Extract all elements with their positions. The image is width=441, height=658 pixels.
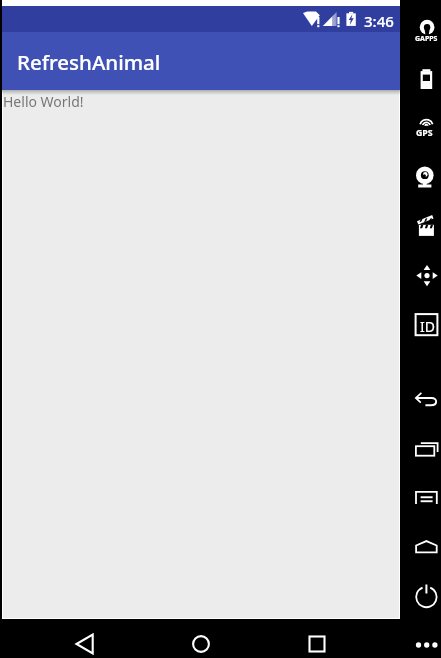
button[interactable]: Menu — [400, 487, 441, 511]
button[interactable]: Back — [62, 619, 107, 658]
button[interactable]: Overview — [400, 438, 441, 464]
button[interactable]: Back — [400, 388, 441, 414]
button[interactable]: Record screen — [400, 210, 441, 240]
button[interactable]: Google Apps — [400, 16, 441, 44]
button[interactable]: Power — [400, 580, 441, 612]
button[interactable]: Home — [400, 536, 441, 560]
button[interactable]: GPS — [400, 114, 441, 138]
button[interactable]: D-pad — [400, 262, 441, 290]
staticText: GAPPS — [415, 34, 438, 44]
button[interactable]: Home — [178, 619, 223, 658]
button[interactable]: Webcam — [400, 164, 441, 192]
button[interactable]: Overview — [294, 619, 339, 658]
button[interactable]: Battery — [400, 65, 441, 95]
staticText: 3:46 — [364, 11, 394, 31]
staticText: GPS — [416, 127, 433, 139]
button[interactable]: Fingerprint ID — [400, 310, 441, 340]
staticText: RefreshAnimal — [17, 48, 161, 76]
button[interactable]: More — [400, 634, 441, 658]
staticText: ID — [420, 317, 435, 336]
staticText: Hello World! — [3, 92, 84, 111]
